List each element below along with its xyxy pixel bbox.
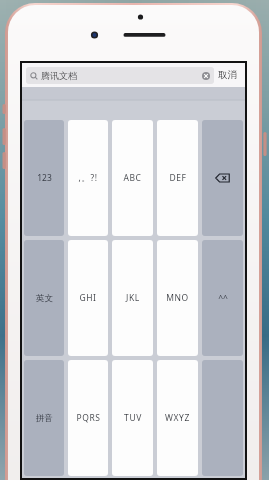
staticText: PQRS	[76, 412, 101, 424]
button[interactable]: WXYZ	[157, 360, 198, 476]
staticText: DEF	[169, 172, 187, 184]
button[interactable]: Clear text	[201, 71, 210, 80]
staticText: 拼音	[36, 413, 53, 424]
button[interactable]: DEF	[157, 120, 198, 236]
staticText: TUV	[124, 412, 142, 424]
button[interactable]: 英文	[24, 240, 64, 356]
staticText: ABC	[123, 172, 142, 184]
button[interactable]: ABC	[112, 120, 153, 236]
button[interactable]: 拼音	[24, 360, 64, 476]
button[interactable]: 取消	[214, 67, 241, 83]
button[interactable]: 腾讯文档	[26, 67, 214, 84]
staticText: 取消	[218, 69, 237, 81]
staticText: 英文	[36, 293, 53, 304]
button[interactable]: TUV	[112, 360, 153, 476]
button[interactable]: ,。?!	[68, 120, 108, 236]
button[interactable]: JKL	[112, 240, 153, 356]
button[interactable]: 123	[24, 120, 64, 236]
staticText: JKL	[126, 292, 140, 304]
staticText: GHI	[79, 292, 97, 304]
staticText: WXYZ	[165, 412, 190, 424]
staticText: ,。?!	[78, 172, 98, 184]
button[interactable]: Backspace	[202, 120, 243, 236]
staticText: 腾讯文档	[41, 70, 77, 81]
button[interactable]: MNO	[157, 240, 198, 356]
staticText: ^^	[218, 292, 228, 304]
button[interactable]: PQRS	[68, 360, 108, 476]
staticText: MNO	[166, 292, 189, 304]
button[interactable]: GHI	[68, 240, 108, 356]
staticText: 123	[37, 172, 52, 184]
button[interactable]: ^^	[202, 240, 243, 356]
